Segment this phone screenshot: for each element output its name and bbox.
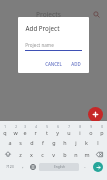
button[interactable]: a — [4, 136, 15, 148]
staticText: q — [3, 129, 7, 136]
staticText: 8 — [79, 125, 81, 129]
staticText: 2 — [15, 125, 17, 129]
button[interactable]: f — [37, 136, 48, 148]
staticText: 9 — [90, 125, 92, 129]
button[interactable]: CANCEL — [42, 59, 65, 69]
staticText: a — [8, 139, 12, 146]
staticText: h — [63, 139, 67, 146]
staticText: n — [74, 151, 78, 158]
button[interactable]: Shift — [0, 148, 15, 160]
staticText: English — [54, 165, 65, 169]
staticText: s — [19, 139, 22, 146]
staticText: 6 — [57, 125, 59, 129]
staticText: 7 — [68, 125, 70, 129]
staticText: 3 — [24, 125, 26, 129]
button[interactable]: Change language — [28, 160, 38, 173]
staticText: w — [13, 129, 18, 136]
staticText: u — [67, 129, 71, 136]
button[interactable]: m — [81, 148, 92, 160]
button[interactable]: English — [39, 163, 79, 171]
staticText: Project name — [25, 42, 54, 48]
staticText: x — [30, 151, 33, 158]
button[interactable]: ADD — [68, 59, 84, 69]
button[interactable]: x — [26, 148, 37, 160]
button[interactable]: 5 — [41, 124, 52, 136]
staticText: f — [42, 139, 44, 146]
staticText: ?123 — [6, 164, 14, 169]
staticText: , — [22, 163, 24, 170]
button[interactable]: z — [15, 148, 26, 160]
staticText: Projects — [36, 10, 61, 19]
staticText: Add Project — [25, 24, 60, 32]
button[interactable]: j — [70, 136, 81, 148]
staticText: 0 — [101, 125, 103, 129]
button[interactable]: s — [15, 136, 26, 148]
staticText: v — [52, 151, 55, 158]
button[interactable]: Project name — [25, 41, 82, 49]
button[interactable]: Backspace — [92, 148, 107, 160]
staticText: z — [19, 151, 22, 158]
staticText: o — [89, 129, 93, 136]
button[interactable]: 2 — [10, 124, 20, 136]
button[interactable]: l — [92, 136, 103, 148]
staticText: m — [84, 151, 90, 158]
staticText: j — [75, 139, 77, 146]
button[interactable]: 6 — [52, 124, 63, 136]
button[interactable]: Comma — [18, 160, 28, 173]
button[interactable]: 9 — [85, 124, 96, 136]
staticText: 1 — [4, 125, 6, 129]
staticText: 5 — [46, 125, 48, 129]
button[interactable]: k — [81, 136, 92, 148]
button[interactable]: c — [37, 148, 48, 160]
button[interactable]: h — [59, 136, 70, 148]
staticText: r — [34, 129, 37, 136]
button[interactable]: v — [48, 148, 59, 160]
staticText: CANCEL — [45, 61, 62, 67]
staticText: y — [56, 129, 59, 136]
button[interactable]: g — [48, 136, 59, 148]
button[interactable]: Search — [89, 7, 103, 21]
staticText: p — [100, 129, 104, 136]
button[interactable]: 3 — [20, 124, 30, 136]
button[interactable]: Enter — [90, 160, 105, 173]
button[interactable]: 0 — [96, 124, 107, 136]
staticText: k — [85, 139, 88, 146]
button[interactable]: 4 — [30, 124, 41, 136]
staticText: e — [23, 129, 27, 136]
button[interactable]: 1 — [0, 124, 10, 136]
button[interactable]: d — [26, 136, 37, 148]
staticText: i — [79, 129, 81, 136]
staticText: ADD — [71, 61, 81, 67]
staticText: c — [41, 151, 44, 158]
button[interactable]: 7 — [63, 124, 74, 136]
button[interactable]: 8 — [74, 124, 85, 136]
button[interactable]: n — [70, 148, 81, 160]
staticText: t — [46, 129, 48, 136]
button[interactable]: ?123 — [2, 160, 18, 173]
button[interactable]: Add project — [88, 107, 103, 122]
staticText: d — [30, 139, 34, 146]
staticText: g — [52, 139, 56, 146]
button[interactable]: b — [59, 148, 70, 160]
staticText: b — [63, 151, 67, 158]
staticText: 4 — [35, 125, 37, 129]
staticText: l — [97, 139, 99, 146]
staticText: . — [84, 163, 86, 170]
